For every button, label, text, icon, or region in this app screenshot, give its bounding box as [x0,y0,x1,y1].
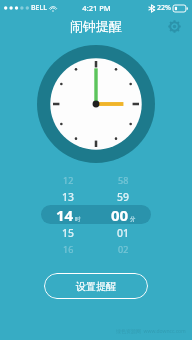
staticText: BELL [31,3,47,13]
staticText: 12 [63,174,74,186]
staticText: 时 [75,216,81,223]
staticText: 分 [130,216,136,223]
staticText: 15 [62,226,75,240]
staticText: 13 [62,190,75,204]
staticText: 绿色资源网 www.downcc.com [116,328,186,335]
staticText: 59 [117,190,130,204]
staticText: 16 [63,243,74,255]
staticText: 闹钟提醒 [70,18,122,34]
button[interactable]: 59 [96,188,151,205]
staticText: 4:21 PM [82,3,111,13]
staticText: 14 [56,205,74,224]
button[interactable]: 00 [96,205,151,224]
staticText: 22% [157,3,171,13]
button[interactable]: 15 [41,224,96,241]
staticText: 设置提醒 [76,280,116,293]
button[interactable]: 14 [41,205,96,224]
button[interactable]: 设置提醒 [44,273,148,299]
staticText: 02 [118,243,129,255]
button[interactable]: 13 [41,188,96,205]
button[interactable]: Settings [164,16,184,36]
staticText: 58 [118,174,129,186]
staticText: 00 [111,205,129,224]
button[interactable]: 01 [96,224,151,241]
staticText: 01 [117,226,130,240]
